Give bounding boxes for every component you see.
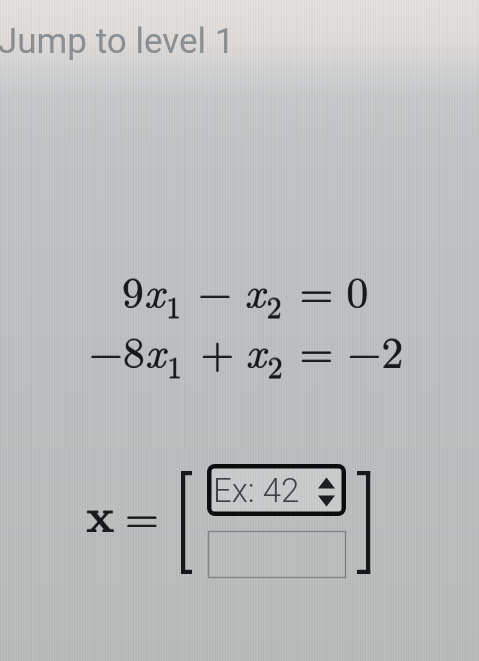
- other: Linear system problem: [0, 0, 479, 661]
- button[interactable]: Answer entry: [0, 0, 479, 661]
